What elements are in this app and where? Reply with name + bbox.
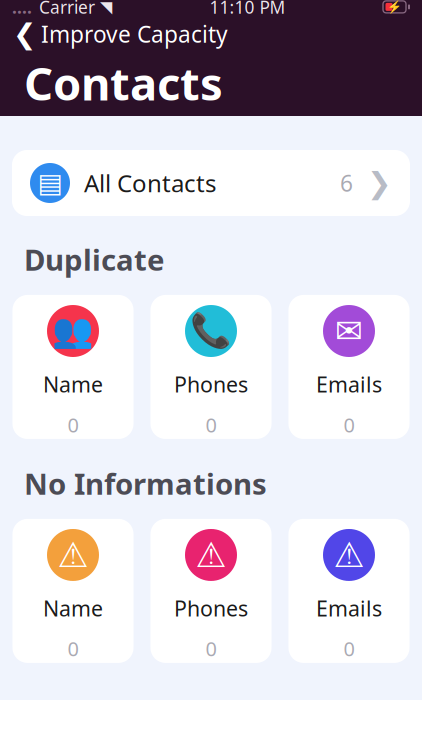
staticText: Duplicate [24, 240, 165, 279]
staticText: No Informations [24, 464, 267, 503]
staticText: Emails [316, 594, 382, 622]
staticText: ⚠ [333, 535, 364, 575]
staticText: 11:10 PM [209, 0, 285, 18]
staticText: Phones [174, 370, 248, 398]
staticText: ❮ [13, 18, 36, 50]
staticText: Phones [174, 594, 248, 622]
staticText: ⚠ [195, 535, 226, 575]
staticText: 0 [205, 635, 216, 662]
staticText: 0 [343, 411, 354, 438]
button[interactable]: ▤ [12, 150, 410, 216]
button[interactable]: ⚠ [12, 519, 133, 663]
staticText: ⚡ [387, 0, 402, 14]
staticText: .... [12, 0, 32, 18]
staticText: 0 [205, 411, 216, 438]
staticText: 👥 [52, 312, 94, 350]
button[interactable]: ❮ [0, 19, 422, 49]
staticText: Contacts [24, 53, 223, 113]
staticText: 0 [343, 635, 354, 662]
button[interactable]: 👥 [12, 295, 133, 439]
button[interactable]: 📞 [150, 295, 271, 439]
staticText: Carrier [39, 0, 95, 18]
staticText: ❯ [367, 166, 392, 200]
staticText: 0 [67, 635, 78, 662]
staticText: ⚠ [57, 535, 88, 575]
button[interactable]: ⚠ [288, 519, 409, 663]
staticText: Improve Capacity [41, 19, 228, 49]
button[interactable]: ⚠ [150, 519, 271, 663]
staticText: 📞 [190, 312, 232, 350]
staticText: All Contacts [84, 167, 216, 199]
staticText: Name [43, 594, 103, 622]
staticText: 6 [340, 168, 353, 198]
staticText: Emails [316, 370, 382, 398]
staticText: 0 [67, 411, 78, 438]
staticText: Name [43, 370, 103, 398]
staticText: ✉ [335, 312, 363, 350]
staticText: ◥ [100, 0, 112, 16]
button[interactable]: ✉ [288, 295, 409, 439]
staticText: ▤ [37, 168, 62, 198]
